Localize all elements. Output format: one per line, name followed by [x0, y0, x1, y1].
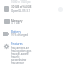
staticText: 30 GB of 64 GB: [11, 5, 32, 9]
staticText: Features: [11, 42, 23, 46]
button[interactable]: [0, 17, 65, 30]
button[interactable]: [0, 29, 65, 42]
staticText: hw.location.gps: [11, 49, 32, 53]
staticText: 3.1 GB: [11, 21, 20, 25]
staticText: hw.sensor: [11, 61, 25, 65]
staticText: hw.camera.ae: [11, 46, 29, 50]
staticText: hw.wifi.aware: [11, 52, 29, 56]
staticText: sw.webview: [11, 58, 27, 62]
staticText: 91% charged: [11, 33, 29, 37]
button[interactable]: [0, 41, 65, 65]
staticText: hw.nfc: [11, 55, 20, 59]
staticText: 1080 x 1920 px: [11, 0, 31, 4]
button[interactable]: [0, 4, 65, 17]
staticText: Memory: [11, 19, 23, 23]
staticText: OpenGL ES 3.1: [11, 9, 31, 13]
staticText: Battery: [11, 30, 21, 34]
button[interactable]: Account: [58, 7, 63, 12]
